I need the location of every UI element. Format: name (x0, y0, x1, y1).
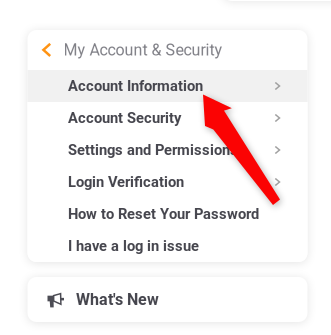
staticText: Login Verification (68, 173, 184, 191)
button[interactable]: Login Verification (27, 166, 307, 198)
button[interactable]: How to Reset Your Password (27, 198, 307, 230)
button[interactable]: My Account & Security (27, 30, 307, 70)
staticText: Account Security (68, 109, 181, 127)
staticText: My Account & Security (63, 41, 222, 59)
button[interactable]: Account Information (27, 70, 307, 102)
staticText: How to Reset Your Password (68, 205, 259, 223)
button[interactable]: What's New (27, 277, 307, 322)
button[interactable]: Account Security (27, 102, 307, 134)
staticText: Settings and Permissions (68, 141, 238, 159)
button[interactable]: I have a log in issue (27, 230, 307, 262)
staticText: Account Information (68, 77, 203, 95)
staticText: What's New (76, 290, 159, 309)
staticText: I have a log in issue (68, 237, 199, 255)
button[interactable]: Settings and Permissions (27, 134, 307, 166)
